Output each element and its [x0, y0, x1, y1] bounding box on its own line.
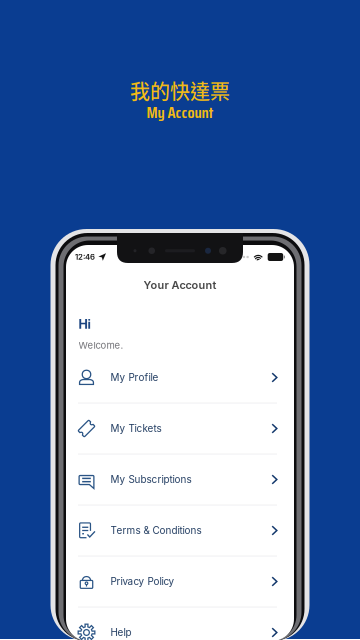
button[interactable]: Privacy Policy — [66, 556, 294, 607]
staticText: My Account — [146, 100, 213, 125]
staticText: 我的快達票 — [130, 76, 230, 105]
staticText: Your Account — [143, 278, 216, 292]
staticText: 12:46 — [75, 252, 95, 262]
staticText: Help — [110, 626, 131, 638]
staticText: Welcome. — [78, 340, 123, 351]
staticText: My Subscriptions — [110, 473, 191, 485]
staticText: My Tickets — [110, 422, 161, 434]
button[interactable]: My Tickets — [66, 403, 294, 454]
staticText: My Profile — [110, 371, 158, 383]
button[interactable]: Help — [66, 607, 294, 640]
button[interactable]: Terms & Conditions — [66, 505, 294, 556]
staticText: Privacy Policy — [110, 575, 174, 587]
button[interactable]: My Profile — [66, 352, 294, 403]
button[interactable]: My Subscriptions — [66, 454, 294, 505]
staticText: Terms & Conditions — [110, 524, 201, 536]
staticText: Hi — [78, 316, 90, 332]
